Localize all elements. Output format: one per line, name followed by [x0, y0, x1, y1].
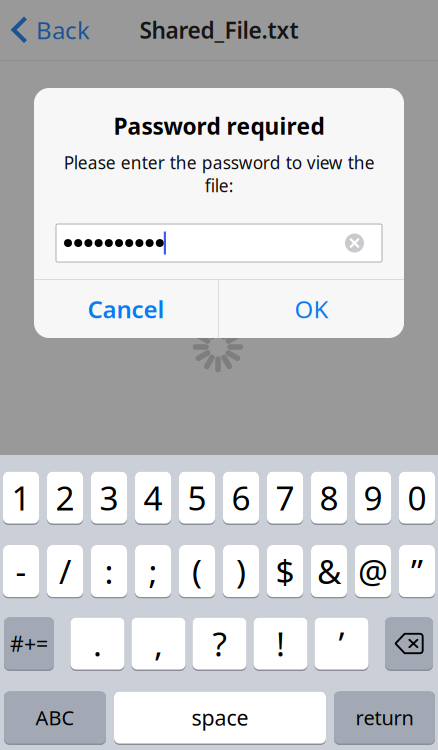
staticText: ’	[338, 621, 344, 666]
staticText: 9	[363, 475, 382, 520]
staticText: Cancel	[87, 293, 164, 325]
button[interactable]: 3	[91, 471, 127, 525]
button[interactable]: &	[311, 545, 347, 598]
button[interactable]: $	[267, 545, 303, 598]
staticText: 1	[11, 475, 30, 520]
button[interactable]: 8	[311, 471, 347, 525]
button[interactable]: 5	[179, 471, 215, 525]
staticText: :	[104, 549, 113, 593]
staticText: #+=	[10, 629, 48, 658]
button[interactable]: #+=	[4, 617, 54, 671]
button[interactable]: )	[223, 545, 259, 598]
button[interactable]: ABC	[4, 691, 106, 745]
staticText: ,	[154, 621, 163, 666]
button[interactable]: :	[91, 545, 127, 598]
button[interactable]: -	[3, 545, 39, 598]
button[interactable]: !	[253, 617, 307, 671]
staticText: 3	[99, 475, 118, 520]
staticText: 2	[55, 475, 74, 520]
button[interactable]: Back	[0, 0, 100, 60]
button[interactable]: .	[70, 617, 124, 671]
staticText: .	[93, 621, 102, 666]
staticText: Back	[36, 14, 90, 46]
staticText: ?	[212, 621, 226, 666]
button[interactable]: space	[114, 691, 326, 745]
button[interactable]: (	[179, 545, 215, 598]
staticText: -	[15, 549, 26, 593]
staticText: Shared_File.txt	[139, 15, 298, 45]
staticText: Password required	[113, 111, 324, 141]
button[interactable]: Clear text	[345, 233, 364, 252]
staticText: 0	[407, 475, 426, 520]
button[interactable]: Delete	[385, 617, 433, 671]
staticText: OK	[294, 293, 328, 325]
button[interactable]: 1	[3, 471, 39, 525]
button[interactable]: /	[47, 545, 83, 598]
staticText: ”	[411, 549, 423, 593]
staticText: 8	[319, 475, 338, 520]
staticText: 7	[275, 475, 294, 520]
staticText: &	[317, 549, 341, 593]
staticText: Please enter the password to view the fi…	[63, 151, 374, 197]
button[interactable]: 6	[223, 471, 259, 525]
button[interactable]: Cancel	[34, 280, 218, 338]
button[interactable]: 0	[399, 471, 435, 525]
staticText: /	[59, 549, 71, 593]
staticText: ;	[148, 549, 157, 593]
button[interactable]: ”	[399, 545, 435, 598]
staticText: @	[358, 549, 388, 593]
staticText: !	[276, 621, 285, 666]
button[interactable]: 9	[355, 471, 391, 525]
staticText: ABC	[35, 704, 74, 731]
staticText: (	[192, 549, 202, 593]
button[interactable]: @	[355, 545, 391, 598]
staticText: 4	[143, 475, 162, 520]
button[interactable]: 2	[47, 471, 83, 525]
button[interactable]: ,	[131, 617, 185, 671]
button[interactable]: ?	[192, 617, 246, 671]
staticText: return	[355, 704, 413, 731]
staticText: space	[191, 703, 248, 732]
button[interactable]: 4	[135, 471, 171, 525]
button[interactable]: 7	[267, 471, 303, 525]
staticText: 6	[231, 475, 250, 520]
button[interactable]: ;	[135, 545, 171, 598]
button[interactable]: return	[334, 691, 435, 745]
staticText: )	[236, 549, 246, 593]
button[interactable]: OK	[219, 280, 404, 338]
button[interactable]: ’	[314, 617, 368, 671]
staticText: 5	[187, 475, 206, 520]
staticText: $	[275, 549, 294, 593]
